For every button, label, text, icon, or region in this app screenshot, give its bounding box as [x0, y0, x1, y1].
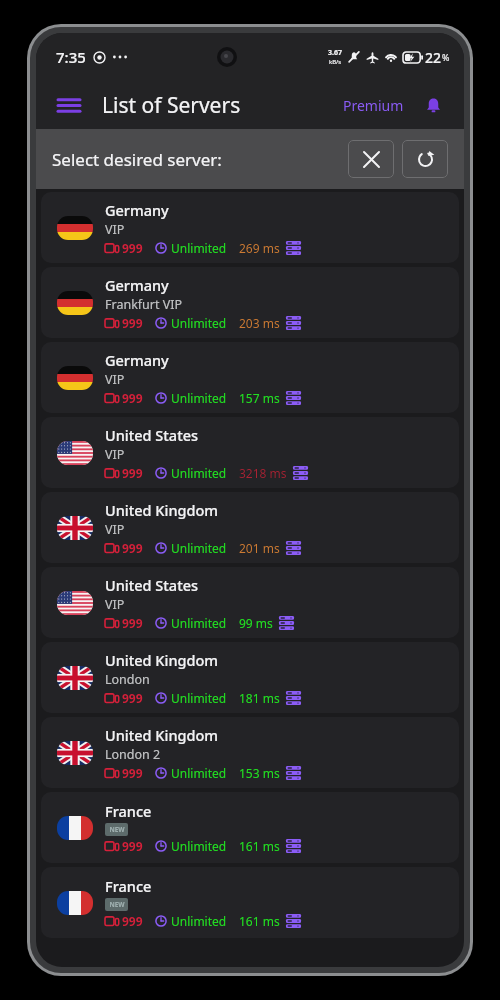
- button[interactable]: Germany: [41, 342, 459, 413]
- staticText: VIP: [105, 371, 125, 388]
- staticText: United States: [105, 425, 199, 445]
- staticText: 161 ms: [239, 838, 280, 854]
- staticText: VIP: [105, 446, 125, 463]
- staticText: 22: [425, 48, 442, 67]
- button[interactable]: United States: [41, 567, 459, 638]
- staticText: 999: [122, 913, 143, 929]
- button[interactable]: United Kingdom: [41, 492, 459, 563]
- staticText: %: [442, 51, 450, 63]
- staticText: 269 ms: [239, 240, 280, 256]
- staticText: Unlimited: [171, 913, 227, 929]
- staticText: United Kingdom: [105, 725, 219, 745]
- button[interactable]: Germany: [41, 192, 459, 263]
- staticText: 999: [122, 540, 143, 556]
- button[interactable]: France: [41, 867, 459, 938]
- staticText: 203 ms: [239, 315, 280, 331]
- staticText: 153 ms: [239, 765, 280, 781]
- button[interactable]: United Kingdom: [41, 642, 459, 713]
- staticText: 201 ms: [239, 540, 280, 556]
- staticText: 181 ms: [239, 690, 280, 706]
- staticText: 157 ms: [239, 390, 280, 406]
- staticText: Germany: [105, 275, 169, 295]
- staticText: Unlimited: [171, 240, 227, 256]
- staticText: Unlimited: [171, 765, 227, 781]
- button[interactable]: Notifications: [418, 90, 448, 120]
- staticText: VIP: [105, 521, 125, 538]
- staticText: France: [105, 876, 152, 896]
- staticText: NEW: [109, 825, 125, 834]
- staticText: 161 ms: [239, 913, 280, 929]
- staticText: 999: [122, 390, 143, 406]
- button[interactable]: United Kingdom: [41, 717, 459, 788]
- button[interactable]: France: [41, 792, 459, 863]
- staticText: 999: [122, 615, 143, 631]
- staticText: France: [105, 801, 152, 821]
- staticText: 3.67: [328, 48, 342, 58]
- staticText: 999: [122, 690, 143, 706]
- staticText: VIP: [105, 221, 125, 238]
- button[interactable]: Premium: [341, 90, 406, 121]
- staticText: NEW: [109, 900, 125, 909]
- staticText: United Kingdom: [105, 500, 219, 520]
- staticText: Unlimited: [171, 615, 227, 631]
- staticText: London: [105, 671, 150, 688]
- staticText: Unlimited: [171, 465, 227, 481]
- staticText: 999: [122, 465, 143, 481]
- staticText: 999: [122, 240, 143, 256]
- staticText: Unlimited: [171, 838, 227, 854]
- staticText: Unlimited: [171, 690, 227, 706]
- staticText: kB/s: [329, 58, 342, 66]
- button[interactable]: United States: [41, 417, 459, 488]
- staticText: Unlimited: [171, 540, 227, 556]
- staticText: London 2: [105, 746, 161, 763]
- staticText: 999: [122, 765, 143, 781]
- button[interactable]: Germany: [41, 267, 459, 338]
- button[interactable]: Menu: [52, 88, 86, 122]
- staticText: 3218 ms: [239, 465, 287, 481]
- staticText: Select desired server:: [52, 148, 222, 171]
- button[interactable]: Refresh: [402, 140, 448, 178]
- staticText: 99 ms: [239, 615, 273, 631]
- staticText: Unlimited: [171, 315, 227, 331]
- staticText: 999: [122, 315, 143, 331]
- button[interactable]: Close: [348, 140, 394, 178]
- staticText: List of Servers: [102, 91, 241, 120]
- staticText: VIP: [105, 596, 125, 613]
- staticText: Germany: [105, 350, 169, 370]
- staticText: Unlimited: [171, 390, 227, 406]
- staticText: 999: [122, 838, 143, 854]
- staticText: Germany: [105, 200, 169, 220]
- staticText: United Kingdom: [105, 650, 219, 670]
- staticText: Frankfurt VIP: [105, 296, 183, 313]
- staticText: Premium: [343, 96, 404, 115]
- staticText: 7:35: [56, 47, 86, 67]
- staticText: United States: [105, 575, 199, 595]
